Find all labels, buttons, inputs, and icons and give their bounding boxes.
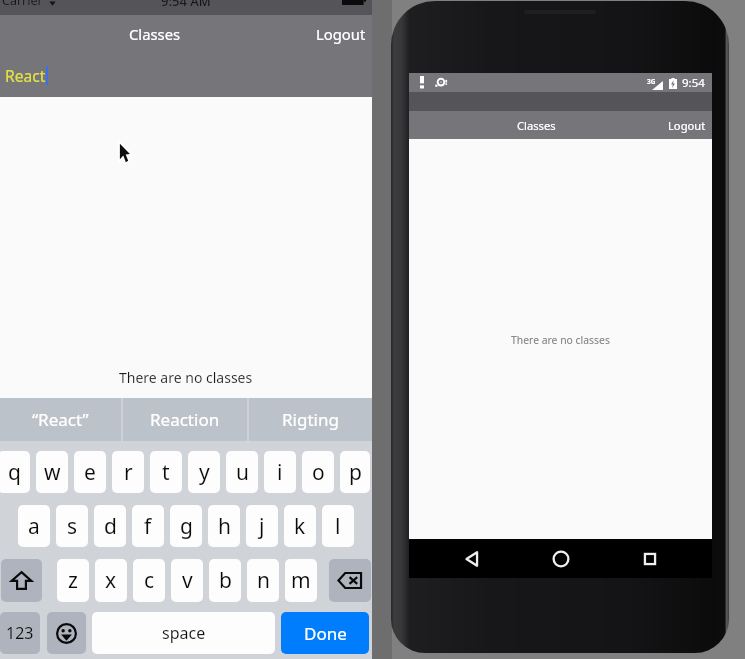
button[interactable]: Backspace bbox=[329, 559, 371, 602]
button[interactable]: Back bbox=[461, 548, 483, 570]
staticText: b bbox=[219, 566, 232, 595]
staticText: d bbox=[104, 512, 117, 541]
staticText: r bbox=[124, 458, 133, 487]
staticText: i bbox=[277, 458, 283, 487]
button[interactable]: u bbox=[226, 451, 258, 493]
staticText: space bbox=[162, 622, 206, 644]
button[interactable]: d bbox=[94, 505, 126, 547]
staticText: There are no classes bbox=[511, 333, 610, 347]
button[interactable]: j bbox=[246, 505, 278, 547]
staticText: a bbox=[28, 512, 40, 541]
button[interactable]: y bbox=[188, 451, 220, 493]
staticText: e bbox=[84, 458, 96, 487]
staticText: m bbox=[291, 566, 311, 595]
button[interactable]: r bbox=[112, 451, 144, 493]
button[interactable]: m bbox=[285, 559, 317, 602]
staticText: Rigting bbox=[282, 408, 339, 431]
button[interactable]: “React” bbox=[0, 398, 121, 441]
button[interactable]: c bbox=[133, 559, 165, 602]
staticText: Done bbox=[304, 622, 347, 645]
button[interactable]: i bbox=[264, 451, 296, 493]
button[interactable]: l bbox=[322, 505, 354, 547]
button[interactable]: t bbox=[150, 451, 182, 493]
staticText: v bbox=[182, 566, 193, 595]
staticText: w bbox=[44, 458, 61, 487]
staticText: s bbox=[67, 512, 78, 541]
staticText: u bbox=[236, 458, 249, 487]
staticText: l bbox=[335, 512, 341, 541]
button[interactable]: o bbox=[302, 451, 334, 493]
staticText: There are no classes bbox=[119, 368, 253, 387]
button[interactable]: n bbox=[247, 559, 279, 602]
staticText: Reaction bbox=[150, 408, 220, 431]
staticText: z bbox=[68, 566, 78, 595]
staticText: 3G bbox=[647, 77, 656, 86]
button[interactable]: 123 bbox=[0, 612, 40, 654]
staticText: Carrier bbox=[2, 0, 43, 7]
staticText: j bbox=[259, 512, 265, 541]
staticText: 123 bbox=[6, 622, 34, 644]
button[interactable]: Done bbox=[281, 612, 369, 654]
staticText: Classes bbox=[129, 24, 181, 44]
staticText: h bbox=[218, 512, 231, 541]
button[interactable]: b bbox=[209, 559, 241, 602]
button[interactable]: Rigting bbox=[249, 398, 372, 441]
button[interactable]: Logout bbox=[309, 18, 372, 50]
button[interactable]: k bbox=[284, 505, 316, 547]
button[interactable]: w bbox=[36, 451, 68, 493]
button[interactable]: Reaction bbox=[123, 398, 247, 441]
button[interactable]: Home bbox=[550, 548, 572, 570]
button[interactable]: Emoji keyboard bbox=[47, 612, 86, 654]
button[interactable]: q bbox=[0, 451, 30, 493]
button[interactable]: s bbox=[56, 505, 88, 547]
button[interactable]: f bbox=[132, 505, 164, 547]
staticText: “React” bbox=[32, 408, 89, 431]
staticText: Classes bbox=[517, 118, 556, 133]
button[interactable]: h bbox=[208, 505, 240, 547]
button[interactable]: space bbox=[92, 612, 275, 654]
staticText: k bbox=[294, 512, 306, 541]
staticText: q bbox=[8, 458, 21, 487]
button[interactable]: g bbox=[170, 505, 202, 547]
staticText: g bbox=[180, 512, 193, 541]
button[interactable]: a bbox=[18, 505, 50, 547]
button[interactable]: Recent apps bbox=[639, 548, 661, 570]
staticText: y bbox=[199, 458, 210, 487]
staticText: n bbox=[257, 566, 270, 595]
staticText: f bbox=[144, 512, 152, 541]
staticText: Logout bbox=[316, 24, 366, 44]
staticText: 9:54 bbox=[682, 75, 705, 91]
staticText: o bbox=[312, 458, 325, 487]
staticText: React bbox=[5, 65, 46, 86]
staticText: Logout bbox=[668, 118, 706, 133]
staticText: c bbox=[144, 566, 155, 595]
staticText: 9:54 AM bbox=[161, 0, 211, 7]
staticText: p bbox=[349, 458, 362, 487]
button[interactable]: Logout bbox=[662, 113, 712, 138]
button[interactable]: v bbox=[171, 559, 203, 602]
button[interactable]: Shift bbox=[1, 559, 42, 602]
button[interactable]: e bbox=[74, 451, 106, 493]
button[interactable]: x bbox=[95, 559, 127, 602]
button[interactable]: z bbox=[57, 559, 89, 602]
staticText: t bbox=[162, 458, 170, 487]
staticText: x bbox=[105, 566, 117, 595]
button[interactable]: p bbox=[340, 451, 370, 493]
